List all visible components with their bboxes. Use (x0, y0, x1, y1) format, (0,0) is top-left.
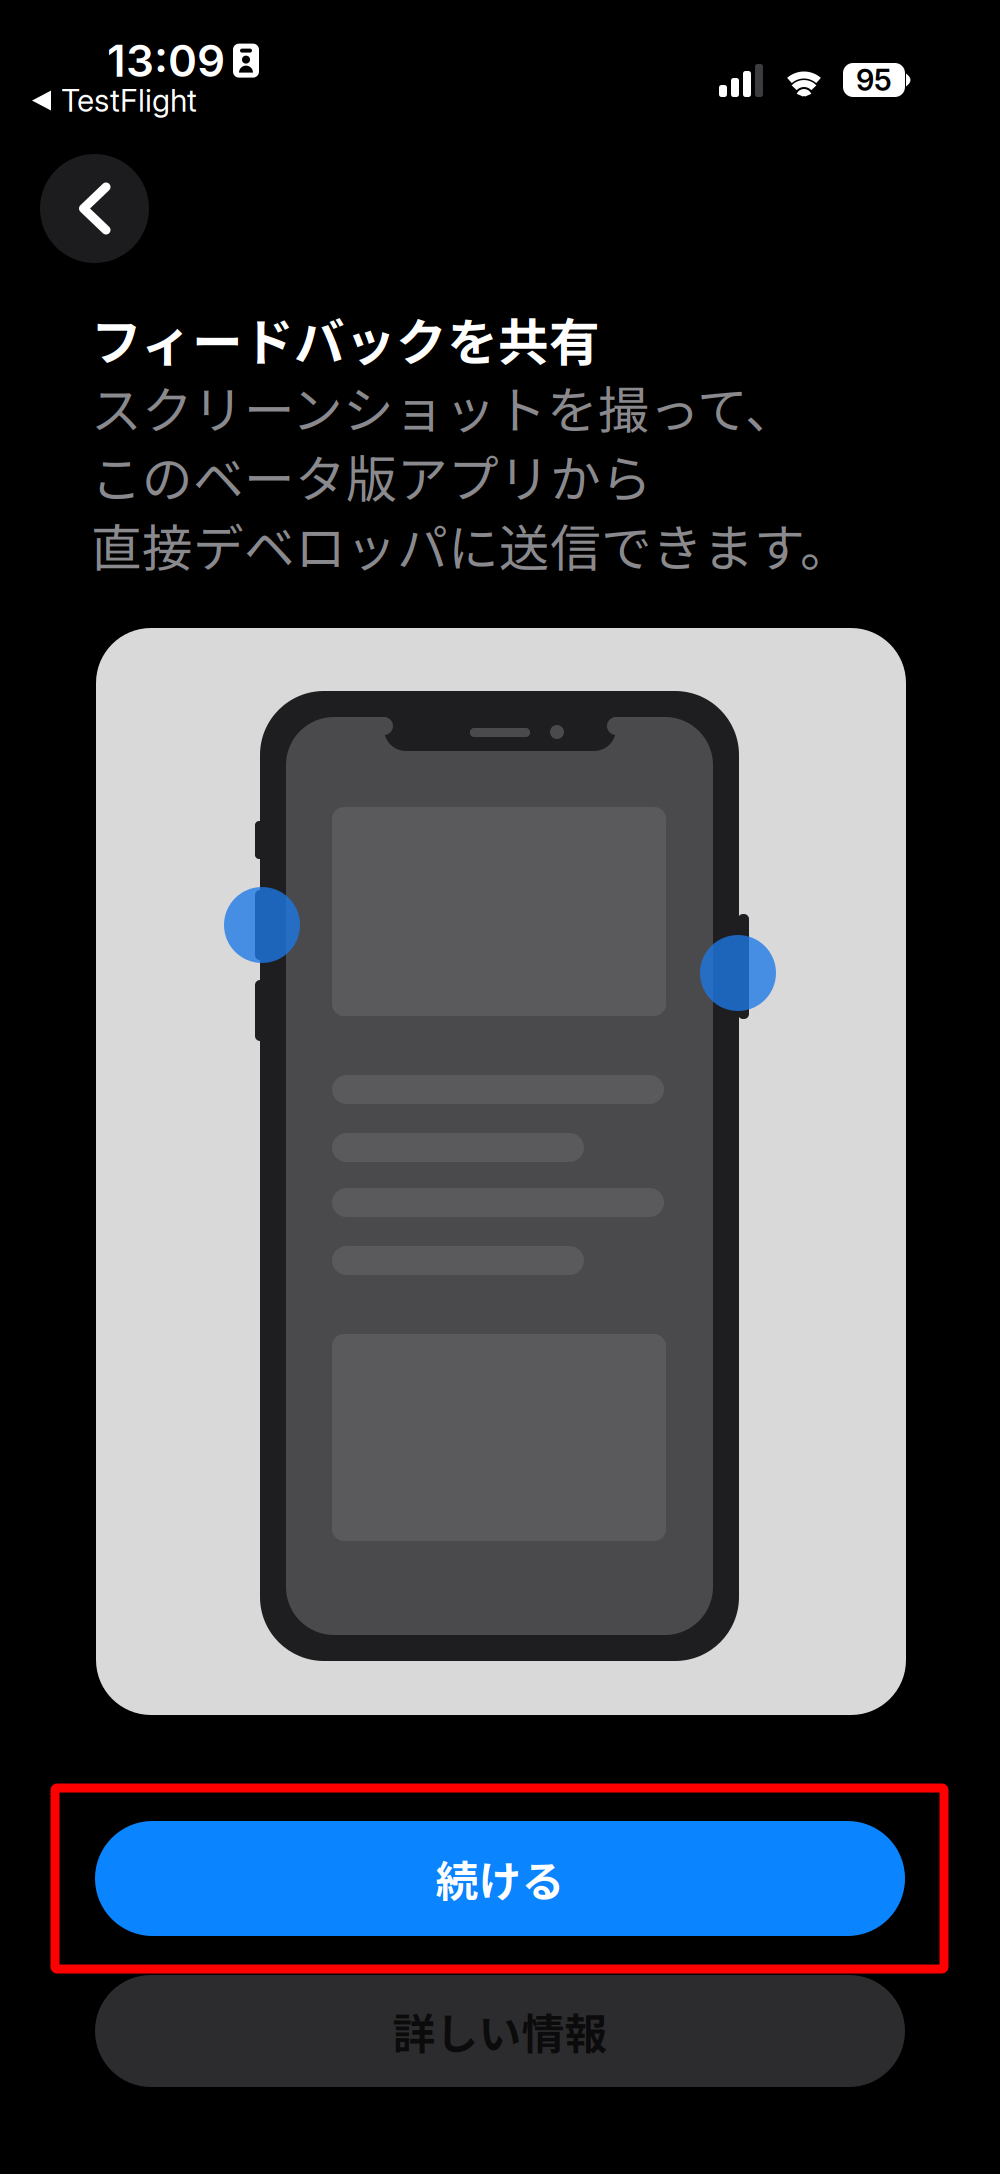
button[interactable]: 続ける (95, 1821, 905, 1936)
staticText: スクリーンショットを撮って、 (91, 370, 796, 443)
staticText: 13:09 (107, 34, 225, 87)
staticText: 95 (856, 62, 892, 98)
staticText: TestFlight (61, 82, 197, 119)
staticText: 続ける (435, 1848, 564, 1909)
staticText: フィードバックを共有 (91, 302, 600, 375)
button[interactable]: Back (40, 154, 149, 263)
staticText: このベータ版アプリから (91, 439, 652, 512)
button[interactable]: 詳しい情報 (95, 1975, 905, 2087)
staticText: 詳しい情報 (392, 2000, 607, 2062)
staticText: 直接デベロッパに送信できます。 (91, 508, 851, 581)
